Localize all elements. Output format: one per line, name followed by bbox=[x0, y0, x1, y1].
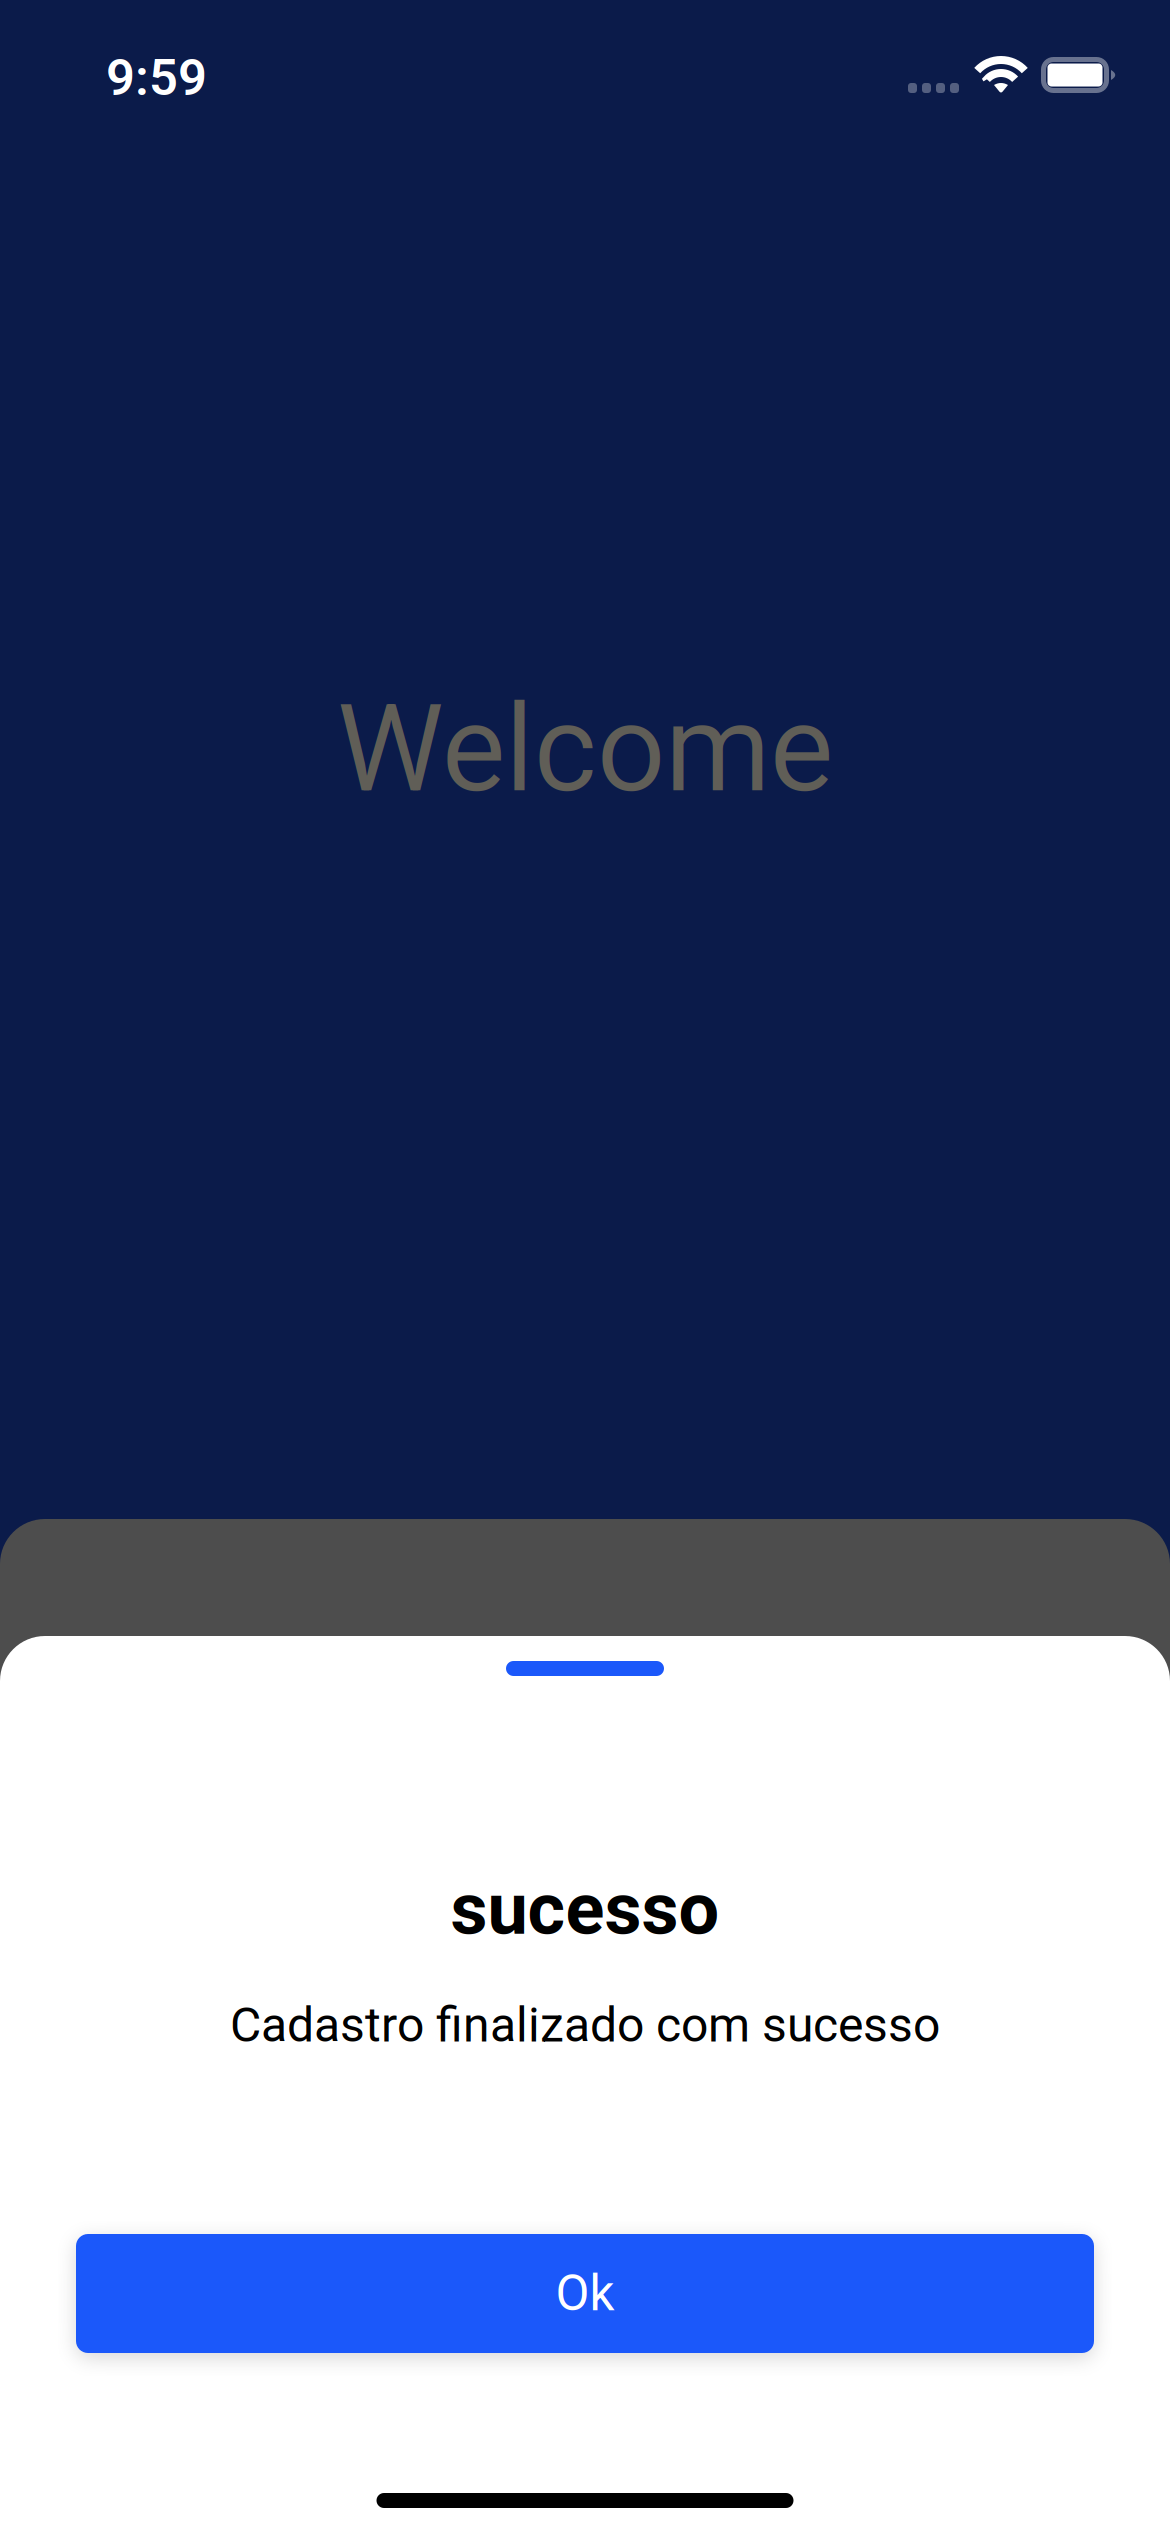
staticText: Cadastro finalizado com sucesso bbox=[230, 1997, 940, 2053]
staticText: sucesso bbox=[450, 1867, 719, 1951]
staticText: 9:59 bbox=[106, 48, 207, 107]
staticText: Ok bbox=[555, 2265, 614, 2322]
staticText: Welcome bbox=[337, 679, 833, 820]
button[interactable]: Ok bbox=[76, 2234, 1094, 2353]
